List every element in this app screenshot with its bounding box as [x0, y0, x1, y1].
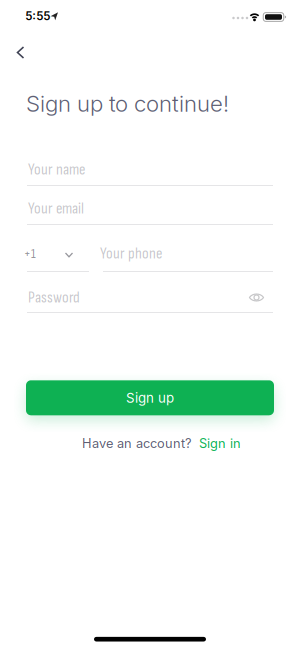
staticText: Sign up: [126, 390, 174, 406]
button[interactable]: Sign in: [199, 436, 241, 451]
staticText: Your email: [28, 199, 84, 218]
button[interactable]: Show password: [242, 285, 270, 309]
staticText: Sign in: [199, 436, 241, 451]
button[interactable]: Sign up: [26, 380, 274, 415]
button[interactable]: Back: [3, 41, 39, 64]
staticText: +1: [24, 246, 36, 262]
staticText: Your phone: [100, 244, 162, 263]
staticText: Sign up to continue!: [26, 90, 229, 117]
staticText: Have an account?: [82, 436, 192, 451]
button[interactable]: Country code +1: [21, 243, 85, 265]
staticText: Password: [28, 288, 80, 307]
staticText: 5:55: [25, 9, 50, 23]
staticText: Your name: [28, 160, 85, 179]
